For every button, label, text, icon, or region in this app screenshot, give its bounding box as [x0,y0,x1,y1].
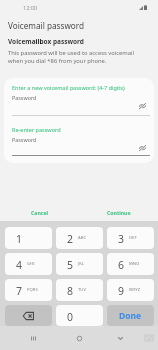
staticText: WXYZ [129,287,141,293]
button[interactable]: 3 [107,227,154,249]
staticText: Enter a new voicemail password: (4-7 dig… [12,84,125,91]
button[interactable]: Continue [79,203,158,221]
staticText: JKL [78,261,84,267]
button[interactable]: Show password [134,98,150,114]
button[interactable]: 5 [56,253,103,275]
button[interactable]: 1 [5,227,52,249]
staticText: MNO [129,261,140,267]
button[interactable]: Done [107,305,154,326]
staticText: ABC [78,235,87,241]
button[interactable]: 8 [56,279,103,301]
button[interactable]: Recents [21,328,45,348]
staticText: GHI [27,261,35,267]
button[interactable]: Show password [134,140,150,156]
staticText: Password [12,94,37,101]
button[interactable]: 0 [56,305,103,326]
button[interactable]: 9 [107,279,154,301]
staticText: 3 [118,232,125,246]
staticText: Done [119,310,142,322]
staticText: 4 [16,258,23,272]
button[interactable]: Backspace [5,305,52,326]
button[interactable]: 2 [56,227,103,249]
staticText: when you dial *86 from your phone. [8,57,107,65]
staticText: 1 [16,232,23,246]
staticText: 7 [16,284,23,298]
staticText: 5 [67,258,74,272]
staticText: Cancel [31,209,49,216]
staticText: 12:00 [23,4,38,11]
button[interactable]: Hide keyboard [141,330,157,346]
staticText: Voicemailbox password [8,37,84,46]
staticText: 2 [67,232,74,246]
button[interactable]: Back [108,328,132,348]
staticText: 6 [118,258,125,272]
button[interactable]: 7 [5,279,52,301]
staticText: Continue [107,209,131,216]
staticText: Re-enter password [12,126,61,133]
button[interactable]: 6 [107,253,154,275]
staticText: 9 [118,284,125,298]
button[interactable]: Home [67,328,91,348]
staticText: DEF [129,235,137,241]
staticText: This password will be used to access voi… [8,49,134,57]
staticText: 8 [67,284,74,298]
button[interactable]: 4 [5,253,52,275]
staticText: 0 [67,310,74,324]
staticText: PQRS [27,287,38,293]
staticText: Voicemail password [8,20,85,31]
staticText: Password [12,136,37,143]
button[interactable]: Cancel [0,203,79,221]
staticText: TUV [78,287,86,293]
